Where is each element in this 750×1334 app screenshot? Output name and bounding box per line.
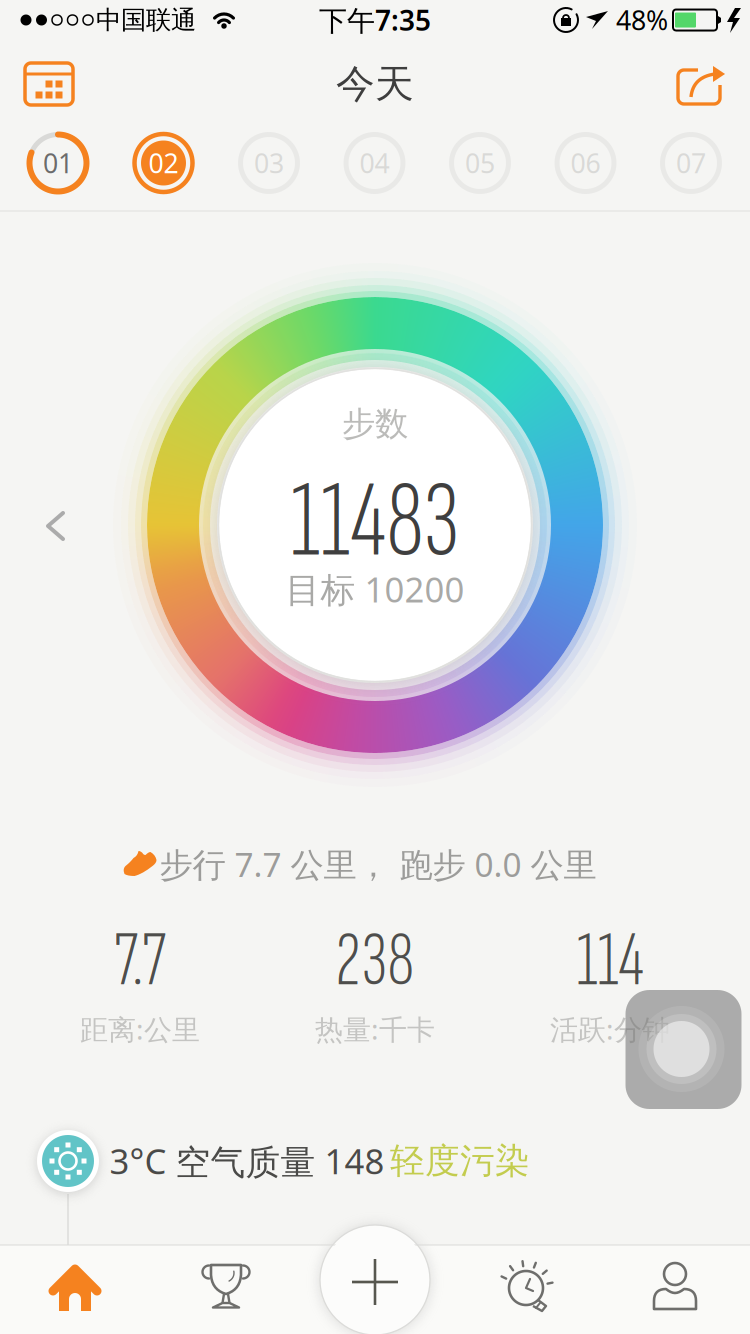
button[interactable]: Share (666, 55, 734, 117)
staticText: 11483 (290, 457, 459, 587)
button[interactable]: Profile (640, 1254, 710, 1320)
button[interactable]: Previous day (0, 0, 750, 1334)
staticText: 03 (254, 145, 284, 181)
staticText: 步行 7.7 公里， 跑步 0.0 公里 (159, 842, 596, 886)
staticText: 下午7:35 (319, 1, 431, 39)
button[interactable]: Add (342, 1249, 408, 1315)
button[interactable]: Achievements (186, 1252, 266, 1322)
staticText: 238 (335, 915, 414, 1007)
staticText: 06 (570, 145, 600, 181)
staticText: 114 (576, 915, 643, 1007)
button[interactable]: 01 (27, 132, 89, 194)
staticText: 3°C 空气质量 148 (109, 1138, 384, 1184)
staticText: 48% (616, 2, 668, 38)
button[interactable]: 06 (554, 132, 616, 194)
staticText: 目标 10200 (285, 566, 464, 612)
staticText: 热量:千卡 (315, 1010, 435, 1048)
button[interactable]: Calendar (13, 52, 85, 116)
button[interactable]: Weather (34, 1127, 102, 1195)
button[interactable]: AssistiveTouch (625, 990, 741, 1109)
staticText: 04 (359, 145, 389, 181)
staticText: 步数 (342, 403, 408, 444)
button[interactable]: 05 (449, 132, 511, 194)
button[interactable]: 07 (660, 132, 722, 194)
staticText: 02 (148, 145, 178, 181)
button[interactable]: 03 (238, 132, 300, 194)
staticText: 轻度污染 (390, 1140, 530, 1182)
staticText: 07 (676, 145, 706, 181)
staticText: 7.7 (114, 915, 166, 1007)
button[interactable]: Discover (485, 1251, 569, 1325)
staticText: 今天 (336, 60, 414, 108)
button[interactable]: Home (30, 1252, 120, 1322)
button[interactable]: 02 (132, 132, 194, 194)
staticText: 01 (43, 145, 73, 181)
staticText: 中国联通 (96, 4, 196, 35)
button[interactable]: 04 (343, 132, 405, 194)
staticText: 活跃:分钟 (550, 1010, 670, 1048)
staticText: 05 (465, 145, 495, 181)
staticText: 距离:公里 (80, 1010, 200, 1048)
